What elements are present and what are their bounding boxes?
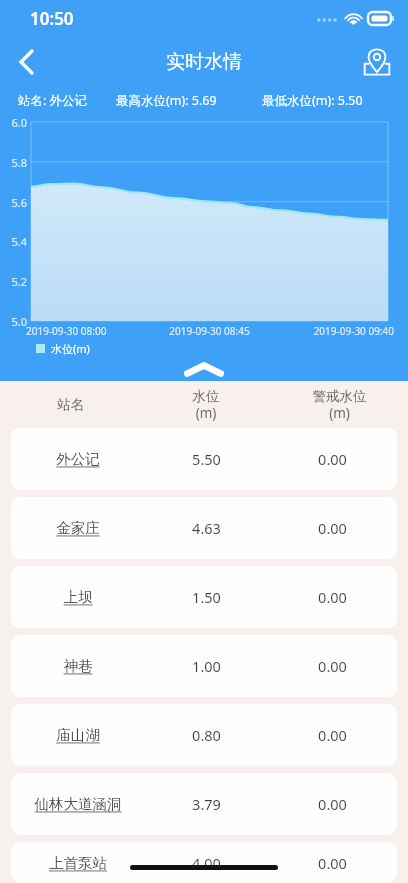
staticText: 5.4 (1, 234, 27, 249)
staticText: 3.79 (145, 794, 268, 814)
staticText: 神巷 (11, 657, 145, 675)
staticText: 1.00 (145, 656, 268, 676)
staticText: 警戒水位 (m) (271, 388, 408, 422)
staticText: 0.00 (268, 853, 397, 873)
staticText: 0.00 (268, 656, 397, 676)
button[interactable]: 仙林大道涵洞 (11, 773, 397, 835)
staticText: 0.80 (145, 725, 268, 745)
staticText: 6.0 (1, 115, 27, 130)
staticText: 0.00 (268, 449, 397, 469)
staticText: 0.00 (268, 794, 397, 814)
button[interactable]: 上首泵站 (11, 842, 397, 883)
button[interactable]: 金家庄 (11, 497, 397, 559)
staticText: 1.50 (145, 587, 268, 607)
staticText: 0.00 (268, 518, 397, 538)
staticText: 最低水位(m): 5.50 (262, 92, 408, 109)
staticText: 5.0 (1, 314, 27, 329)
button[interactable]: 神巷 (11, 635, 397, 697)
staticText: 上坝 (11, 588, 145, 606)
staticText: 2019-09-30 09:40 (271, 324, 394, 338)
staticText: 5.2 (1, 274, 27, 289)
staticText: 5.8 (1, 155, 27, 170)
staticText: 庙山湖 (11, 726, 145, 744)
button[interactable]: Map (354, 39, 400, 85)
staticText: 4.63 (145, 518, 268, 538)
staticText: 实时水情 (166, 50, 242, 74)
button[interactable]: Back (0, 36, 52, 88)
staticText: 0.00 (268, 587, 397, 607)
staticText: 0.00 (268, 725, 397, 745)
staticText: 10:50 (30, 7, 74, 30)
staticText: 水位(m) (51, 341, 90, 356)
staticText: 2019-09-30 08:45 (148, 324, 271, 338)
button[interactable]: Collapse chart (182, 362, 226, 378)
button[interactable]: 外公记 (11, 428, 397, 490)
staticText: 上首泵站 (11, 854, 145, 872)
staticText: 最高水位(m): 5.69 (116, 92, 262, 109)
staticText: 5.50 (145, 449, 268, 469)
staticText: 5.6 (1, 195, 27, 210)
staticText: 仙林大道涵洞 (11, 795, 145, 813)
staticText: 金家庄 (11, 519, 145, 537)
staticText: 站名 (0, 396, 141, 413)
staticText: 4.00 (145, 853, 268, 873)
staticText: 水位 (m) (141, 388, 271, 422)
staticText: 外公记 (11, 450, 145, 468)
button[interactable]: 庙山湖 (11, 704, 397, 766)
staticText: 站名: 外公记 (18, 92, 116, 109)
staticText: 2019-09-30 08:00 (26, 324, 148, 338)
button[interactable]: 上坝 (11, 566, 397, 628)
